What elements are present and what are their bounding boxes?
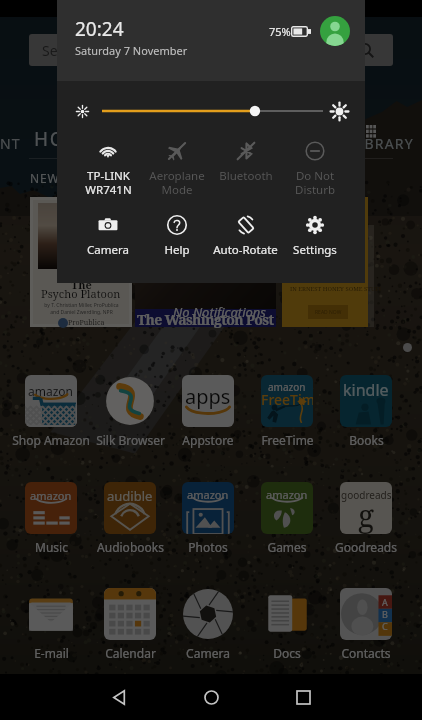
button[interactable]: Camera (74, 214, 142, 258)
button[interactable]: LIBRARY (336, 134, 422, 153)
button[interactable]: Back (87, 674, 151, 720)
button[interactable]: Aeroplane Mode (142, 140, 211, 197)
button[interactable]: Help (142, 214, 211, 258)
staticText: Games (267, 539, 307, 555)
staticText: FreeTime (261, 432, 314, 448)
button[interactable]: HOME (20, 126, 112, 152)
button[interactable]: apps (169, 375, 247, 448)
staticText: FreeTime (261, 390, 313, 409)
button[interactable]: Docs (248, 588, 326, 661)
staticText: g (358, 495, 375, 534)
staticText: Bluetooth (219, 168, 273, 184)
staticText: READ NOW (315, 309, 342, 316)
button[interactable]: amazon (12, 482, 90, 555)
staticText: Saturday 7 November (75, 43, 188, 58)
staticText: Books (349, 432, 384, 448)
staticText: goodreads (341, 488, 392, 502)
staticText: Appstore (182, 432, 234, 448)
button[interactable]: E-mail (12, 588, 90, 661)
staticText: audible (107, 487, 153, 505)
staticText: Goodreads (335, 539, 397, 555)
staticText: amazon (268, 380, 306, 394)
button[interactable]: TP-LINK WR741N (74, 140, 142, 197)
button[interactable]: audible (91, 482, 169, 555)
staticText: amazon (28, 383, 74, 399)
staticText: B (382, 608, 388, 620)
staticText: amazon (266, 487, 308, 502)
button[interactable]: Silk Browser (91, 375, 169, 448)
staticText: by T. Christian Miller, ProPublica and D… (44, 302, 119, 316)
button[interactable]: A (327, 588, 405, 661)
staticText: kindle (343, 379, 389, 401)
staticText: 20:24 (75, 16, 124, 42)
staticText: Psycho Platoon (41, 286, 121, 301)
staticText: No Notifications (173, 303, 266, 321)
staticText: Help (164, 242, 190, 258)
button[interactable]: Bluetooth (211, 140, 280, 184)
staticText: Calendar (105, 645, 156, 661)
staticText: Silk Browser (96, 432, 165, 448)
staticText: Auto-Rotate (213, 242, 278, 258)
staticText: Music (35, 539, 68, 555)
staticText: IN ERNEST HONEY SOME STUFF (290, 285, 381, 293)
button[interactable]: amazon (248, 482, 326, 555)
staticText: ProPublica (68, 318, 105, 328)
staticText: amazon (30, 488, 72, 503)
staticText: Contacts (341, 645, 391, 661)
staticText: Do Not Disturb (295, 168, 335, 197)
button[interactable]: Recents (271, 674, 335, 720)
staticText: Camera (186, 645, 230, 661)
button[interactable]: All apps (357, 117, 385, 145)
staticText: Photos (188, 539, 228, 555)
staticText: The Washington Post (137, 310, 274, 328)
button[interactable]: Calendar (91, 588, 169, 661)
staticText: Docs (273, 645, 301, 661)
staticText: Camera (87, 242, 129, 258)
staticText: C (382, 620, 388, 632)
button[interactable]: Do Not Disturb (280, 140, 349, 197)
staticText: A (382, 596, 388, 608)
staticText: HOME (34, 126, 98, 152)
button[interactable]: kindle (327, 375, 405, 448)
button[interactable]: Profile (320, 16, 350, 46)
staticText: LIBRARY (350, 134, 414, 153)
button[interactable]: Camera (169, 588, 247, 661)
staticText: TP-LINK WR741N (85, 168, 132, 197)
staticText: Settings (293, 242, 337, 258)
staticText: Aeroplane Mode (149, 168, 205, 197)
button[interactable]: Auto-Rotate (211, 214, 280, 258)
staticText: E-mail (34, 645, 69, 661)
staticText: The (71, 277, 92, 292)
staticText: Search (42, 41, 87, 60)
staticText: Shop Amazon (12, 432, 90, 448)
staticText: Audiobooks (97, 539, 164, 555)
staticText: 75% (269, 24, 291, 39)
button[interactable]: amazon (248, 375, 326, 448)
button[interactable]: Search (29, 34, 393, 66)
button[interactable]: amazon (12, 375, 90, 448)
button[interactable]: Settings (280, 214, 349, 258)
button[interactable]: Home (179, 674, 243, 720)
button[interactable]: RECENT (0, 134, 35, 153)
staticText: amazon (187, 487, 229, 502)
staticText: apps (185, 383, 231, 410)
button[interactable]: amazon (169, 482, 247, 555)
staticText: RECENT (0, 134, 21, 153)
staticText: NEW (30, 170, 60, 186)
button[interactable]: goodreads (327, 482, 405, 555)
